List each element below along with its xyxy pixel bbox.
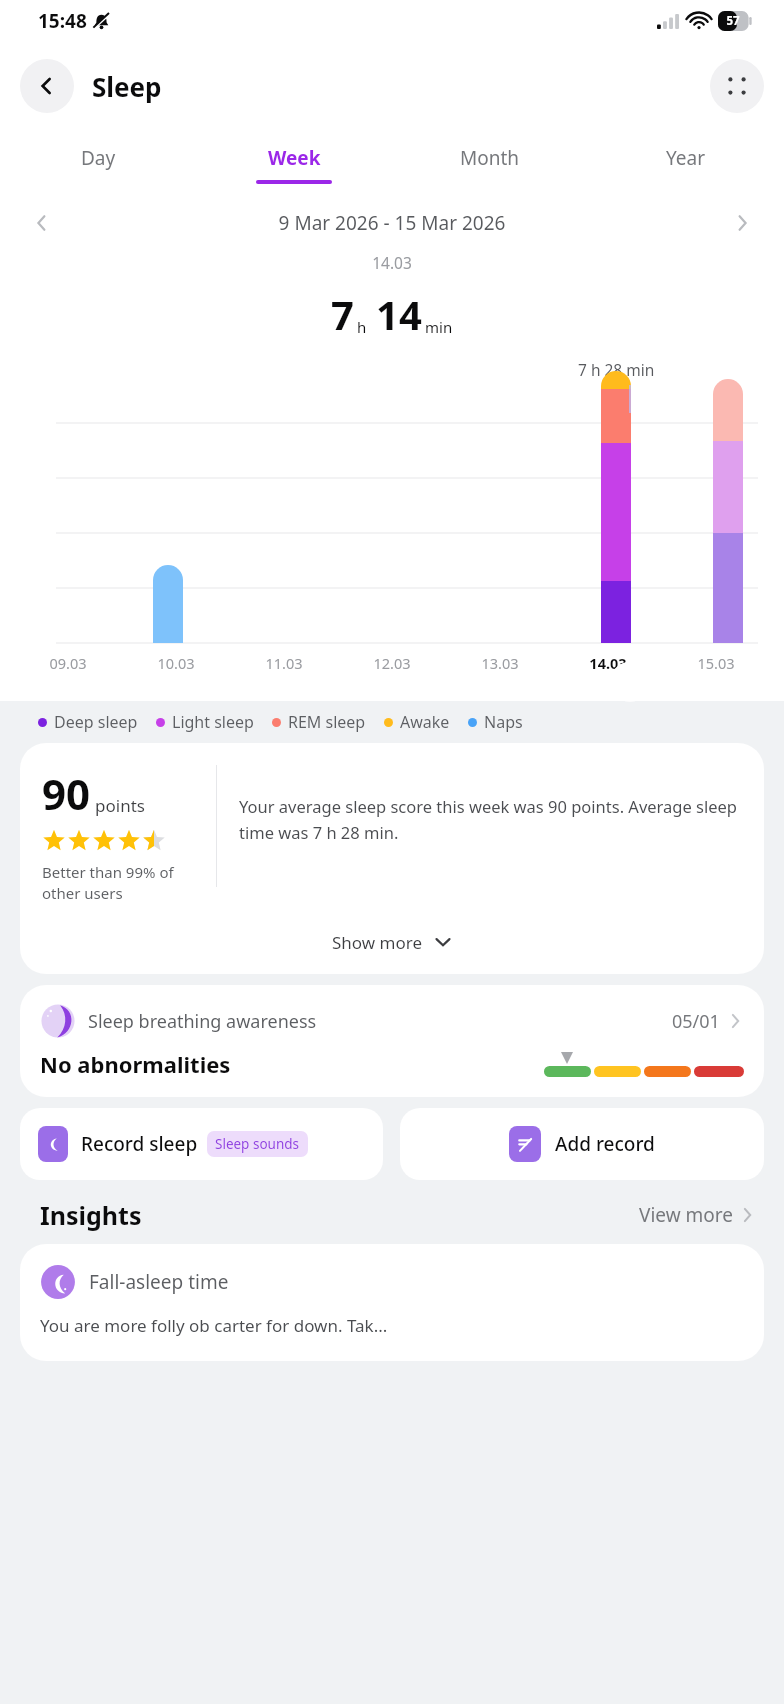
staticText: Week	[268, 145, 321, 171]
staticText: Light sleep	[172, 711, 254, 733]
staticText: 14.03	[0, 252, 784, 273]
staticText: 13.03	[481, 653, 519, 673]
staticText: Add record	[555, 1131, 655, 1157]
staticText: 12.03	[373, 653, 411, 673]
staticText: You are more folly ob carter for down. T…	[40, 1314, 388, 1337]
staticText: 05/01	[672, 1009, 720, 1034]
staticText: 7	[331, 287, 354, 341]
staticText: View more	[639, 1202, 733, 1228]
staticText: 14	[376, 287, 422, 341]
button[interactable]: Week	[196, 130, 392, 192]
staticText: Awake	[400, 711, 450, 733]
button[interactable]: 90	[20, 743, 764, 974]
button[interactable]: View more	[633, 1196, 762, 1234]
staticText: REM sleep	[288, 711, 366, 733]
staticText: No abnormalities	[40, 1049, 231, 1079]
button[interactable]: Show more	[20, 914, 764, 970]
staticText: Sleep	[92, 69, 162, 104]
staticText: 9 Mar 2026 - 15 Mar 2026	[62, 210, 722, 236]
staticText: Day	[81, 145, 116, 171]
button[interactable]: Sleep breathing awareness	[20, 985, 764, 1097]
staticText: 14.03	[589, 653, 627, 673]
button[interactable]: Year	[588, 130, 784, 192]
staticText: 57	[721, 13, 745, 29]
button[interactable]: Next week	[722, 203, 762, 243]
button[interactable]: Day	[0, 130, 196, 192]
staticText: 15.03	[697, 653, 735, 673]
staticText: Deep sleep	[54, 711, 138, 733]
staticText: h	[357, 317, 367, 337]
staticText: Record sleep	[81, 1131, 198, 1157]
staticText: Month	[460, 145, 520, 171]
staticText: Naps	[484, 711, 523, 733]
staticText: Sleep sounds	[215, 1135, 300, 1153]
staticText: Show more	[332, 931, 423, 954]
staticText: Sleep breathing awareness	[88, 1009, 317, 1034]
staticText: 15:48	[38, 8, 87, 34]
button[interactable]: Add record	[400, 1108, 764, 1180]
button[interactable]: Fall-asleep time	[20, 1244, 764, 1361]
staticText: 7 h 28 min	[578, 359, 655, 380]
staticText: Insights	[40, 1198, 142, 1232]
staticText: Year	[666, 145, 706, 171]
button[interactable]: Record sleep	[20, 1108, 383, 1180]
staticText: Better than 99% of other users	[42, 862, 174, 904]
staticText: 11.03	[265, 653, 303, 673]
staticText: min	[425, 317, 453, 337]
button[interactable]: Month	[392, 130, 588, 192]
staticText: Your average sleep score this week was 9…	[239, 795, 748, 844]
staticText: Fall-asleep time	[89, 1269, 229, 1295]
staticText: 90	[42, 765, 91, 822]
staticText: 09.03	[49, 653, 87, 673]
staticText: 10.03	[157, 653, 195, 673]
button[interactable]: More options	[710, 59, 764, 113]
staticText: points	[95, 794, 145, 817]
button[interactable]: Back	[20, 59, 74, 113]
button[interactable]: Previous week	[22, 203, 62, 243]
